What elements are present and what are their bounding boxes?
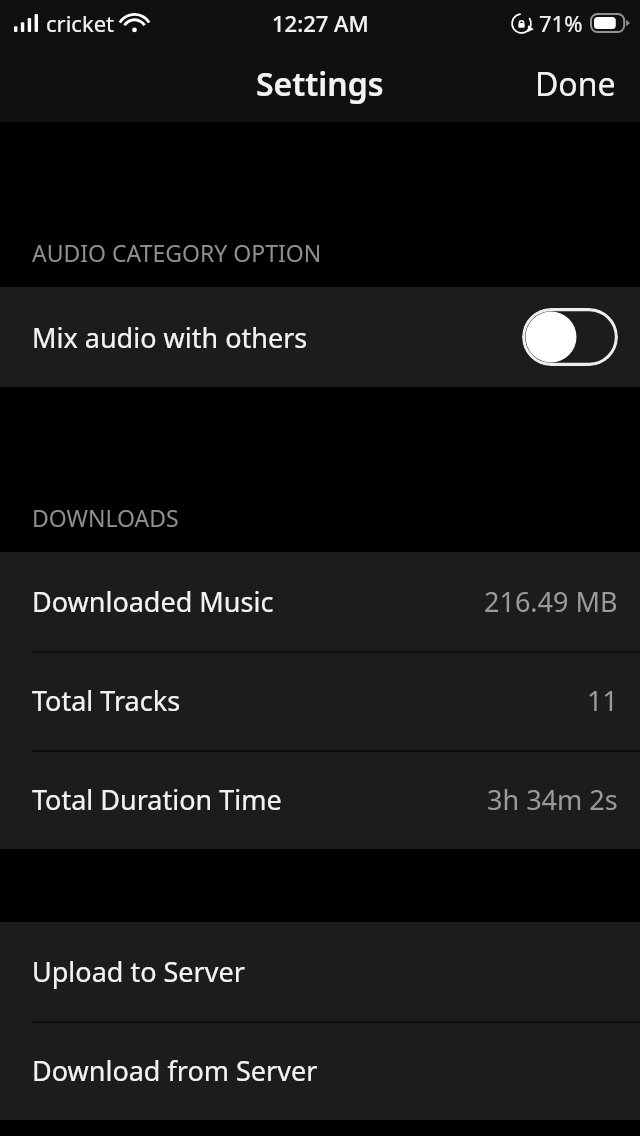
button[interactable]: Done <box>511 50 640 118</box>
button[interactable]: Mix audio with others <box>0 287 640 387</box>
staticText: 12:27 AM <box>272 8 369 38</box>
staticText: 216.49 MB <box>484 583 618 620</box>
button[interactable]: Upload to Server <box>0 922 640 1021</box>
staticText: Mix audio with others <box>32 319 522 356</box>
button[interactable]: Downloaded Music <box>0 552 640 651</box>
staticText: 71% <box>539 8 583 38</box>
staticText: 11 <box>587 682 618 719</box>
staticText: Done <box>535 62 616 106</box>
staticText: Download from Server <box>32 1052 318 1089</box>
button[interactable]: Total Duration Time <box>0 750 640 849</box>
staticText: Upload to Server <box>32 953 245 990</box>
staticText: Downloaded Music <box>32 583 274 620</box>
staticText: AUDIO CATEGORY OPTION <box>32 237 322 268</box>
staticText: Total Duration Time <box>32 781 282 818</box>
staticText: cricket <box>46 8 114 38</box>
button[interactable]: Total Tracks <box>0 651 640 750</box>
button[interactable]: Download from Server <box>0 1021 640 1120</box>
staticText: 3h 34m 2s <box>487 781 618 818</box>
button[interactable]: Mix audio with others toggle <box>522 308 618 366</box>
staticText: Total Tracks <box>32 682 181 719</box>
staticText: Settings <box>256 62 384 106</box>
staticText: DOWNLOADS <box>32 502 179 533</box>
